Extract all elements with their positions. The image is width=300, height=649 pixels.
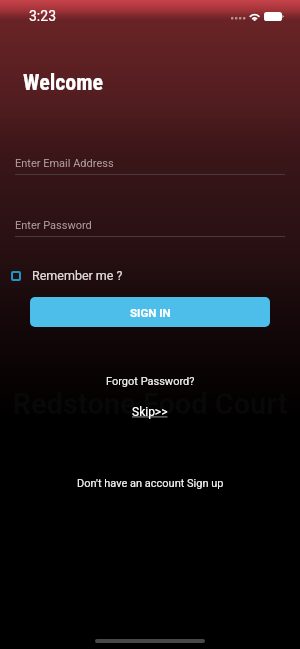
button[interactable]: Remember me ?: [11, 266, 129, 285]
staticText: Enter Email Address: [15, 157, 114, 170]
button[interactable]: Don't have an account Sign up: [73, 477, 228, 490]
staticText: 3:23: [29, 8, 56, 24]
button[interactable]: SIGN IN: [30, 297, 270, 327]
button[interactable]: Skip>>: [128, 405, 172, 419]
staticText: Enter Password: [15, 219, 92, 232]
staticText: SIGN IN: [130, 306, 171, 319]
staticText: Remember me ?: [32, 268, 123, 283]
staticText: Welcome: [23, 70, 104, 96]
staticText: Redstone Food Court: [12, 387, 288, 421]
button[interactable]: Forgot Password?: [102, 375, 199, 388]
